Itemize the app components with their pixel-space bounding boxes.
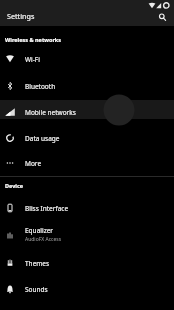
staticText: Sounds	[25, 285, 48, 294]
staticText: Wireless & networks	[5, 36, 62, 43]
staticText: Bliss Interface	[25, 204, 69, 213]
button[interactable]: Bluetooth	[0, 73, 174, 99]
button[interactable]: Mobile networks	[0, 99, 174, 125]
staticText: Device	[5, 182, 24, 189]
button[interactable]	[154, 9, 170, 25]
button[interactable]: More	[0, 150, 174, 176]
staticText: Data usage	[25, 134, 60, 143]
staticText: Equalizer	[25, 226, 54, 235]
button[interactable]: Bliss Interface	[0, 195, 174, 221]
staticText: More	[25, 159, 42, 168]
staticText: Bluetooth	[25, 82, 56, 91]
staticText: Wi-Fi	[25, 55, 40, 64]
staticText: Mobile networks	[25, 108, 76, 117]
button[interactable]	[0, 221, 174, 247]
button[interactable]: Sounds	[0, 276, 174, 302]
staticText: AudioFX Access	[25, 236, 62, 243]
button[interactable]: Wi-Fi	[0, 46, 174, 72]
button[interactable]: Data usage	[0, 125, 174, 151]
button[interactable]: Themes	[0, 250, 174, 276]
staticText: Themes	[25, 259, 50, 268]
staticText: Settings	[7, 11, 35, 21]
